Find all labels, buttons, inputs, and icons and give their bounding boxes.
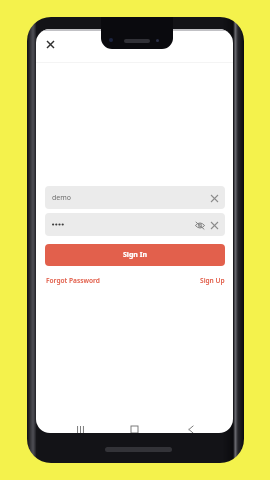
button[interactable]: Sign In bbox=[45, 244, 225, 266]
button[interactable]: Clear bbox=[208, 219, 220, 231]
button[interactable]: Forgot Password bbox=[46, 276, 100, 285]
button[interactable]: Toggle password visibility bbox=[194, 219, 206, 231]
button[interactable]: demo bbox=[45, 186, 225, 209]
button[interactable]: Sign Up bbox=[200, 276, 225, 285]
button[interactable]: Back bbox=[177, 425, 204, 433]
button[interactable]: Close bbox=[41, 35, 59, 53]
button[interactable]: Home bbox=[121, 425, 148, 433]
button[interactable]: Toggle password visibility bbox=[45, 213, 225, 236]
button[interactable]: Clear bbox=[208, 192, 220, 204]
staticText: demo bbox=[52, 193, 72, 203]
staticText: Sign In bbox=[123, 250, 148, 260]
button[interactable]: Recents bbox=[67, 425, 94, 433]
